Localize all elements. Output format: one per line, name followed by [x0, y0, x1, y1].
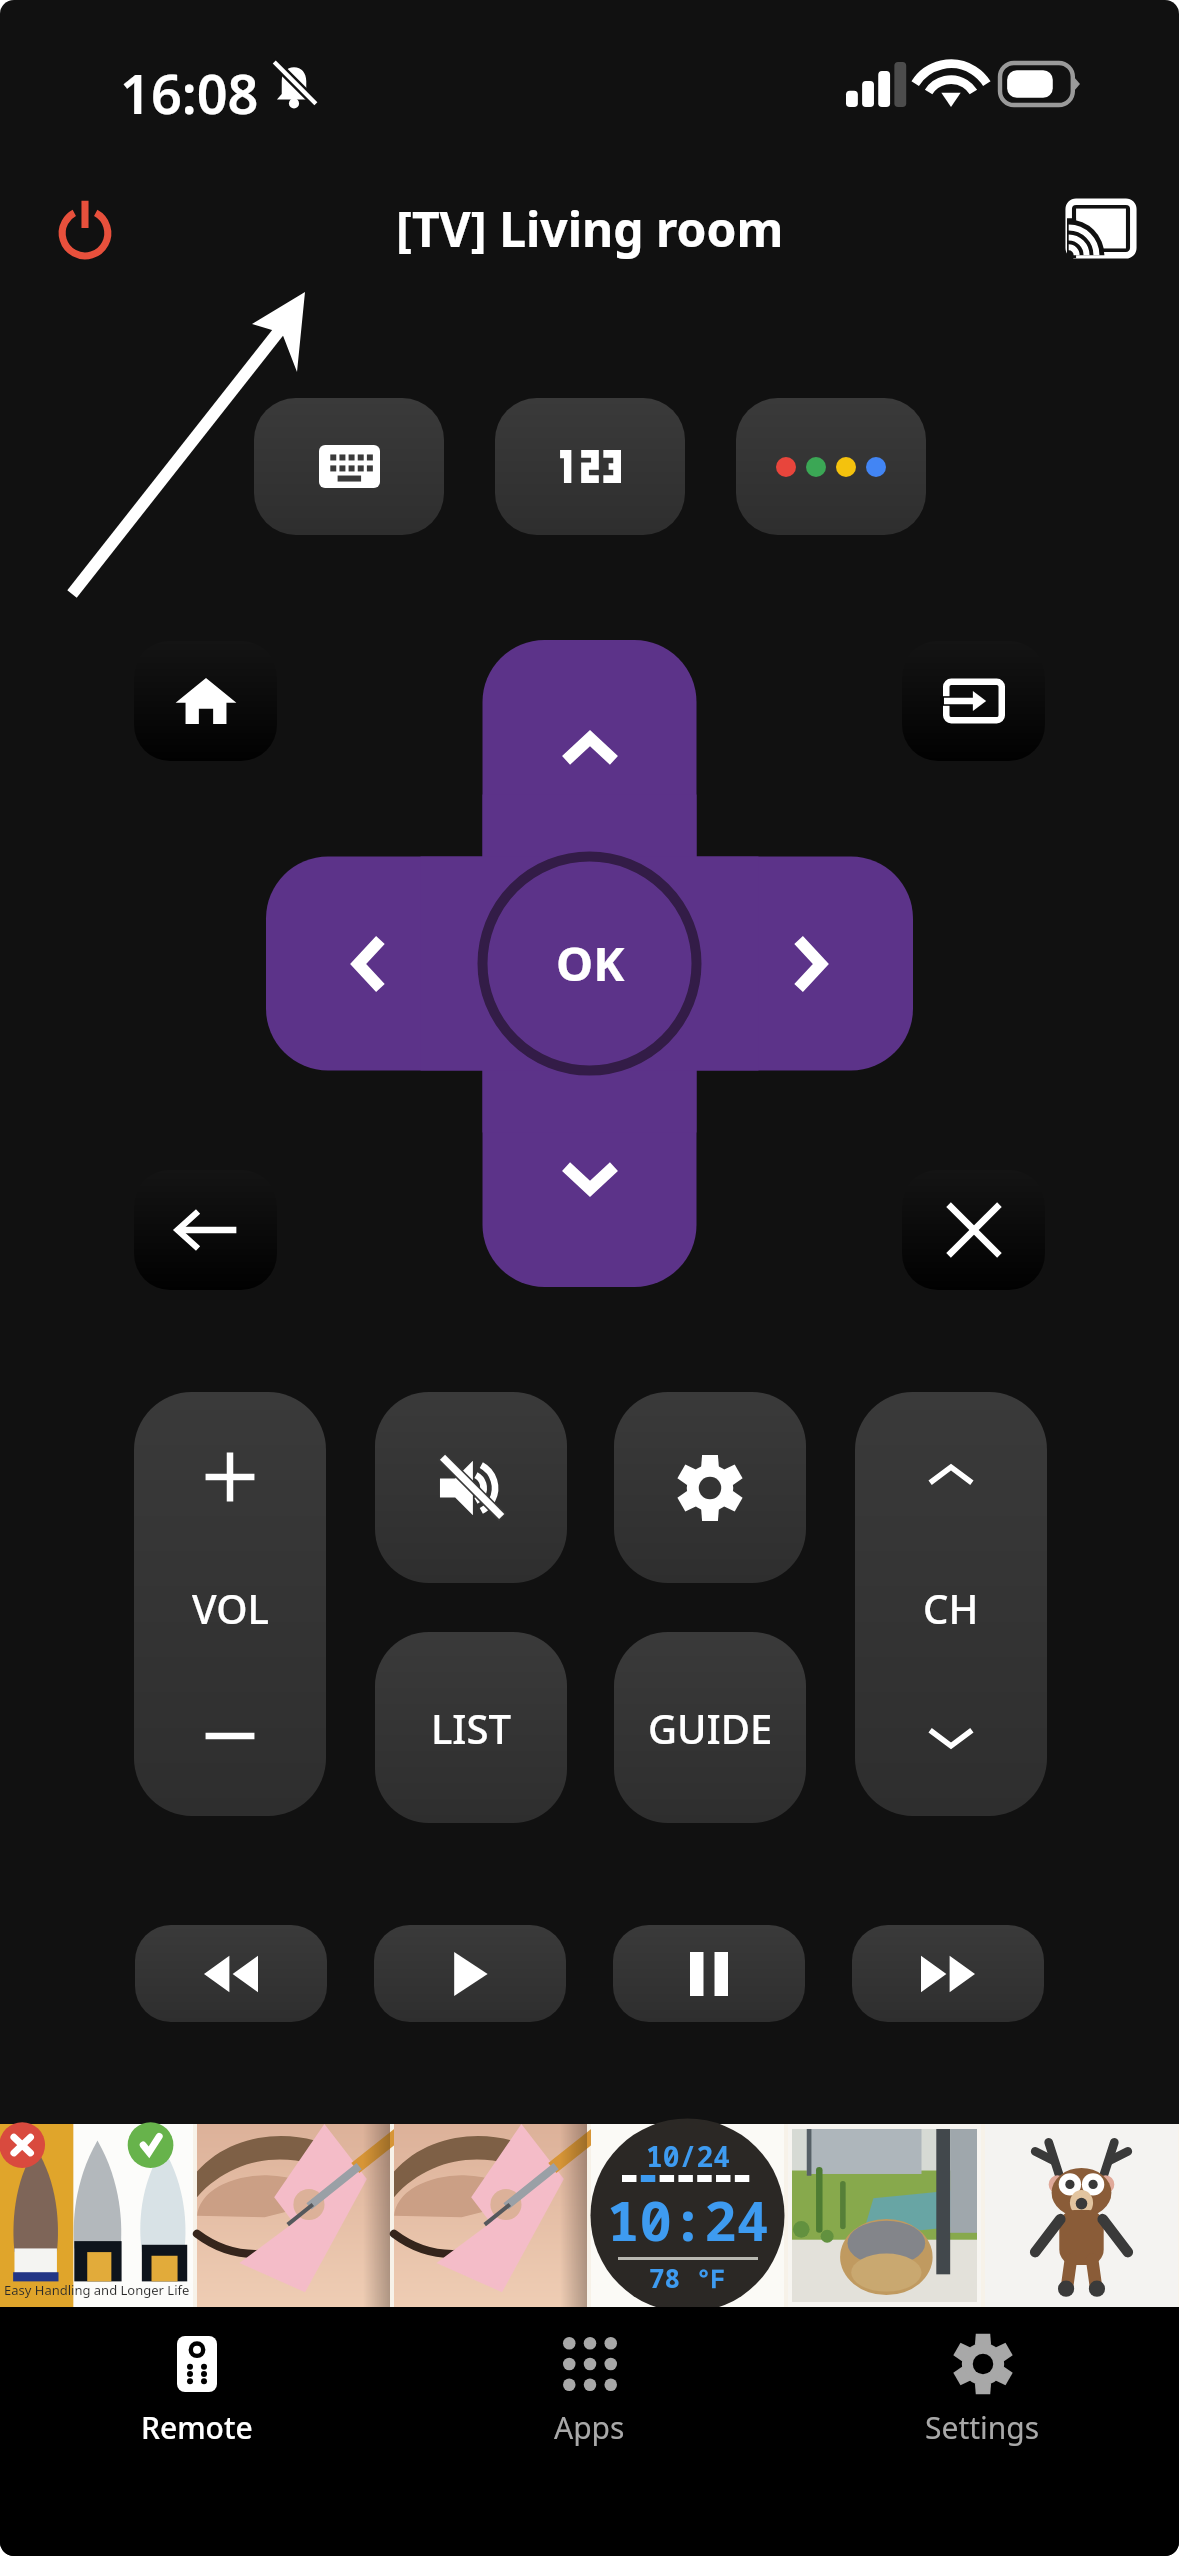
button[interactable]	[495, 398, 685, 535]
button[interactable]: Power	[33, 176, 137, 280]
button[interactable]: Remote	[0, 2307, 393, 2556]
button[interactable]: Right	[765, 922, 849, 1006]
button[interactable]: Advertisement	[0, 2124, 1179, 2307]
button[interactable]: Close	[902, 1170, 1045, 1290]
staticText: GUIDE	[648, 1701, 773, 1755]
button[interactable]: Mute	[375, 1392, 567, 1583]
button[interactable]: List	[375, 1632, 567, 1823]
button[interactable]: Settings	[786, 2307, 1179, 2556]
button[interactable]: Back	[134, 1170, 277, 1290]
button[interactable]: Home	[134, 641, 277, 761]
button[interactable]	[254, 398, 444, 535]
staticText: Easy Handling and Longer Life	[4, 2281, 190, 2299]
button[interactable]: Rewind	[135, 1925, 327, 2022]
button[interactable]: Volume up	[134, 1392, 326, 1561]
staticText: CH	[923, 1581, 979, 1635]
staticText: Settings	[925, 2407, 1040, 2448]
button[interactable]: Down	[548, 1133, 632, 1217]
button[interactable]: Volume down	[134, 1655, 326, 1816]
staticText: Remote	[141, 2407, 253, 2448]
button[interactable]: OK	[483, 857, 697, 1071]
button[interactable]: Guide	[614, 1632, 806, 1823]
button[interactable]: Cast	[1049, 176, 1153, 280]
staticText: 16:08	[120, 56, 259, 130]
staticText: Apps	[554, 2407, 625, 2448]
button[interactable]: Up	[548, 710, 632, 794]
button[interactable]: Left	[330, 922, 414, 1006]
button[interactable]: Input source	[902, 641, 1045, 761]
button[interactable]: Apps	[393, 2307, 786, 2556]
button[interactable]: Channel down	[855, 1655, 1047, 1816]
staticText: 10/24	[646, 2137, 731, 2175]
button[interactable]: Pause	[613, 1925, 805, 2022]
staticText: [TV] Living room	[396, 196, 784, 261]
staticText: OK	[556, 931, 625, 995]
staticText: LIST	[431, 1701, 511, 1755]
button[interactable]: Fast forward	[852, 1925, 1044, 2022]
button[interactable]: Play	[374, 1925, 566, 2022]
button[interactable]: Settings	[614, 1392, 806, 1583]
staticText: 10:24	[607, 2183, 769, 2257]
staticText: 78 ℉	[649, 2260, 728, 2295]
button[interactable]: Channel up	[855, 1392, 1047, 1561]
staticText: VOL	[192, 1581, 269, 1635]
button[interactable]	[736, 398, 926, 535]
